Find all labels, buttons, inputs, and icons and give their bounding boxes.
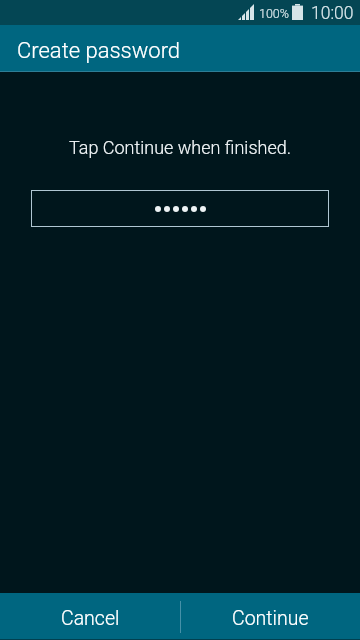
- button[interactable]: Continue: [180, 593, 360, 640]
- button[interactable]: Cancel: [0, 593, 180, 640]
- staticText: 100%: [259, 6, 290, 21]
- staticText: 10:00: [311, 3, 354, 24]
- other: Signal strength: [238, 4, 254, 20]
- button[interactable]: [31, 190, 329, 227]
- staticText: Create password: [17, 38, 181, 64]
- other: Battery full: [292, 4, 303, 20]
- staticText: Continue: [232, 607, 309, 630]
- staticText: Cancel: [61, 607, 120, 630]
- staticText: Tap Continue when finished.: [0, 137, 360, 158]
